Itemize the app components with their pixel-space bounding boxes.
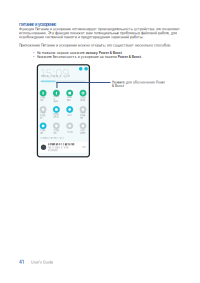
- staticText: User's Guide: [31, 260, 53, 264]
- button[interactable]: Screenshot captured: [39, 142, 88, 153]
- staticText: Power & Boost.: [118, 55, 142, 59]
- button[interactable]: Настройки: [80, 122, 86, 133]
- staticText: Очистка: [40, 96, 46, 102]
- staticText: Антивирус: [67, 96, 73, 102]
- staticText: Настройки: [80, 129, 86, 134]
- staticText: Power & Boost: [53, 95, 59, 103]
- button[interactable]: Очистка: [40, 90, 46, 100]
- button[interactable]: Power & Boost: [53, 90, 60, 100]
- staticText: иконку Power & Boost: [86, 51, 122, 55]
- staticText: использованию. Эта функция покажет вам п…: [19, 31, 177, 35]
- staticText: На главном экране нажмите: [37, 51, 86, 55]
- button[interactable]: Локация: [40, 122, 46, 133]
- button[interactable]: Резерв: [66, 122, 73, 133]
- staticText: Enterprise wifi city: [40, 136, 63, 139]
- staticText: Питание и ускорение: [19, 22, 56, 27]
- button[interactable]: Профиль: [53, 122, 60, 133]
- button[interactable]: Охлаждение: [40, 106, 46, 117]
- staticText: Профиль: [53, 129, 59, 134]
- button[interactable]: Экономия: [80, 90, 86, 100]
- staticText: Tap to share or view screenshot: [48, 146, 69, 152]
- staticText: Локация: [40, 129, 46, 134]
- staticText: Приложение Питание и ускорение можно отк…: [19, 43, 171, 47]
- staticText: освобождения системной памяти и предотвр…: [19, 35, 143, 39]
- staticText: Охлаждение: [40, 111, 46, 119]
- staticText: Tuesday, August 9, 2018: [40, 74, 70, 77]
- staticText: Функция Питание и ускорение оптимизирует…: [19, 27, 180, 31]
- staticText: now: [82, 146, 86, 149]
- staticText: WiFi: [67, 114, 72, 117]
- button[interactable]: Антивирус: [66, 90, 73, 100]
- button[interactable]: Напоминание: [80, 106, 86, 117]
- staticText: Напоминание: [80, 111, 86, 119]
- button[interactable]: WiFi: [66, 106, 73, 117]
- staticText: 41: [19, 259, 24, 265]
- staticText: Экономия: [80, 96, 86, 102]
- staticText: Нажмите для обозначения Power: [112, 80, 165, 84]
- staticText: Нажмите Безопасность и ускорение на пане…: [37, 55, 118, 59]
- staticText: & Boost: [112, 84, 124, 88]
- staticText: Резерв: [67, 130, 73, 133]
- button[interactable]: Менеджер: [53, 106, 60, 117]
- staticText: Менеджер: [53, 113, 59, 118]
- staticText: 15:09: [40, 66, 69, 81]
- staticText: Screenshot captured: [48, 143, 75, 146]
